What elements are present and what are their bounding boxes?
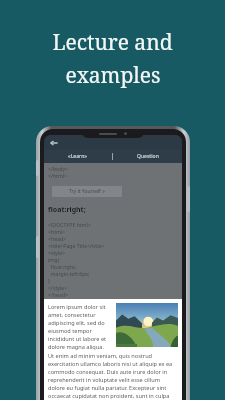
staticText: Try it Yourself » [69,188,105,195]
staticText: margin-left:6px; [48,270,90,277]
staticText: examples [65,61,161,90]
button[interactable]: «Learn» [44,150,112,163]
staticText: «Learn» [68,153,88,160]
button[interactable]: Try it Yourself » [52,186,122,197]
staticText: <style> [48,249,66,256]
staticText: </body> [48,165,69,172]
staticText: </head> [48,291,69,298]
staticText: Ut enim ad minim veniam, quis nostrud ex… [48,352,178,400]
staticText: float:right; [48,263,77,270]
staticText: float:right; [48,205,86,215]
staticText: <title>Page Title</title> [48,242,105,249]
staticText: <html> [48,228,66,235]
staticText: </style> [48,284,68,291]
staticText: Lorem ipsum dolor sit amet, consectetur … [48,303,113,351]
staticText: <head> [48,235,67,242]
staticText: Lecture and [52,28,173,57]
staticText: Question [137,153,159,160]
button[interactable]: Back [48,137,60,149]
staticText: </html> [48,172,68,179]
button[interactable]: Question [113,150,182,163]
staticText: } [48,277,50,284]
staticText: img{ [48,256,60,263]
staticText: <!DOCTYPE html> [48,221,91,228]
